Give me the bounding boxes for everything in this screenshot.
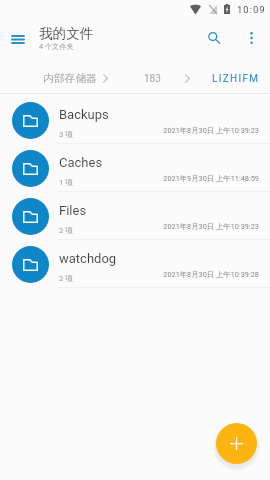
staticText: 4 个文件夹 [39, 42, 74, 51]
button[interactable]: watchdog [0, 240, 270, 288]
staticText: 2021年8月30日 上午10:39:28 [163, 270, 259, 279]
button[interactable]: LIZHIFM [212, 73, 260, 85]
staticText: watchdog [59, 251, 117, 266]
button[interactable]: More options [237, 24, 265, 52]
button[interactable]: Menu [4, 25, 32, 53]
button[interactable]: 183 [144, 73, 161, 85]
staticText: 10:09 [237, 4, 266, 15]
staticText: Files [59, 203, 87, 218]
button[interactable]: Search [200, 24, 228, 52]
staticText: Caches [59, 155, 103, 170]
staticText: 1 项 [59, 177, 74, 187]
button[interactable]: Files [0, 192, 270, 240]
button[interactable]: Backups [0, 96, 270, 144]
button[interactable]: Add [216, 423, 257, 464]
button[interactable]: Caches [0, 144, 270, 192]
staticText: 2021年8月30日 上午10:39:23 [163, 126, 259, 135]
staticText: 我的文件 [39, 25, 94, 42]
button[interactable]: 内部存储器 [43, 72, 97, 86]
staticText: 3 项 [59, 129, 74, 139]
staticText: 2021年8月30日 上午10:39:23 [163, 222, 259, 231]
staticText: 2 项 [59, 273, 74, 283]
staticText: 2021年9月30日 上午11:48:59 [163, 174, 259, 183]
staticText: Backups [59, 107, 109, 122]
staticText: 2 项 [59, 225, 74, 235]
